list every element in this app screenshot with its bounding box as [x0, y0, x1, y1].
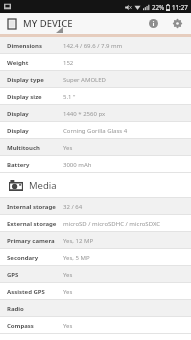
staticText: Display size	[7, 93, 42, 101]
button[interactable]: Display resolution	[0, 105, 191, 122]
button[interactable]: Device	[4, 16, 19, 31]
staticText: Media	[29, 179, 57, 192]
staticText: Display resolution	[7, 110, 57, 118]
staticText: Yes	[63, 288, 73, 296]
button[interactable]: Radio	[0, 300, 191, 317]
staticText: Yes, 5 MP	[63, 254, 90, 262]
staticText: Yes, 12 MP	[63, 237, 94, 245]
staticText: 32 / 64	[63, 203, 83, 211]
button[interactable]: Info	[145, 15, 162, 32]
button[interactable]: Display protection	[0, 122, 191, 139]
staticText: 1440 * 2560 px	[63, 110, 106, 118]
staticText: Display type	[7, 76, 44, 84]
button[interactable]: GPS	[0, 266, 191, 283]
button[interactable]: Assisted GPS	[0, 283, 191, 300]
staticText: 22%	[152, 3, 165, 11]
staticText: Super AMOLED	[63, 76, 106, 84]
button[interactable]: Compass	[0, 317, 191, 334]
button[interactable]: Media	[0, 173, 191, 198]
staticText: 3000 mAh	[63, 161, 92, 169]
staticText: Primary camera	[7, 237, 55, 245]
staticText: Compass	[7, 322, 34, 330]
button[interactable]: Display size	[0, 88, 191, 105]
button[interactable]: Display type	[0, 71, 191, 88]
staticText: microSD / microSDHC / microSDXC	[63, 220, 161, 228]
staticText: 11:27	[172, 3, 188, 11]
staticText: Radio	[7, 305, 24, 313]
button[interactable]: Settings	[169, 15, 186, 32]
button[interactable]: Internal storage	[0, 198, 191, 215]
staticText: MY DEVICE	[23, 17, 73, 30]
staticText: Weight	[7, 59, 29, 67]
button[interactable]: External storage	[0, 215, 191, 232]
staticText: Yes	[63, 322, 73, 330]
staticText: Secondary camera	[7, 254, 57, 262]
button[interactable]: Primary camera	[0, 232, 191, 249]
staticText: Battery	[7, 161, 30, 169]
button[interactable]: Battery	[0, 156, 191, 173]
staticText: Dimensions	[7, 42, 42, 50]
button[interactable]: Weight	[0, 54, 191, 71]
staticText: External storage	[7, 220, 57, 228]
staticText: 152	[63, 59, 74, 67]
button[interactable]: Secondary camera	[0, 249, 191, 266]
button[interactable]: Dimensions	[0, 37, 191, 54]
staticText: Assisted GPS	[7, 288, 45, 296]
staticText: Multitouch	[7, 144, 40, 152]
staticText: Display protection	[7, 127, 57, 135]
staticText: Corning Gorilla Glass 4	[63, 127, 128, 135]
button[interactable]: Multitouch	[0, 139, 191, 156]
button[interactable]: MY DEVICE	[23, 17, 73, 30]
staticText: 5.1 "	[63, 93, 76, 101]
staticText: 142.4 / 69.6 / 7.9 mm	[63, 42, 123, 50]
staticText: GPS	[7, 271, 19, 279]
staticText: Internal storage	[7, 203, 56, 211]
staticText: Yes	[63, 271, 73, 279]
staticText: Yes	[63, 144, 73, 152]
